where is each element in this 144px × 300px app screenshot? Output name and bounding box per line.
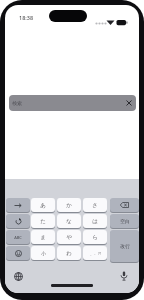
- staticText: ま: [40, 234, 46, 241]
- staticText: 18:38: [19, 14, 34, 21]
- button[interactable]: は: [83, 214, 107, 228]
- button[interactable]: た: [31, 214, 55, 228]
- button[interactable]: 空白: [110, 214, 139, 228]
- staticText: ら: [92, 234, 98, 241]
- button[interactable]: 検索: [9, 95, 136, 111]
- staticText: 改行: [120, 243, 130, 249]
- staticText: や: [66, 234, 72, 241]
- button[interactable]: わ: [57, 246, 81, 260]
- staticText: 、。?!: [90, 251, 101, 256]
- staticText: わ: [66, 250, 72, 257]
- button[interactable]: 、。?!: [83, 246, 107, 260]
- button[interactable]: さ: [83, 198, 107, 212]
- button[interactable]: 小: [31, 246, 55, 260]
- button[interactable]: 改行: [110, 230, 139, 262]
- button[interactable]: や: [57, 230, 81, 244]
- staticText: た: [40, 218, 46, 225]
- button[interactable]: ら: [83, 230, 107, 244]
- staticText: あ: [40, 202, 46, 209]
- staticText: な: [66, 218, 72, 225]
- button[interactable]: か: [57, 198, 81, 212]
- button[interactable]: な: [57, 214, 81, 228]
- button[interactable]: [6, 198, 30, 212]
- button[interactable]: [110, 198, 139, 212]
- staticText: か: [66, 202, 72, 209]
- button[interactable]: ABC: [6, 230, 30, 244]
- staticText: ABC: [14, 235, 22, 240]
- staticText: 小: [41, 250, 46, 256]
- staticText: さ: [92, 202, 98, 209]
- button[interactable]: [6, 246, 30, 260]
- staticText: は: [92, 218, 98, 225]
- staticText: 空白: [120, 218, 130, 224]
- button[interactable]: ま: [31, 230, 55, 244]
- button[interactable]: あ: [31, 198, 55, 212]
- button[interactable]: [6, 214, 30, 228]
- staticText: 検索: [12, 100, 22, 106]
